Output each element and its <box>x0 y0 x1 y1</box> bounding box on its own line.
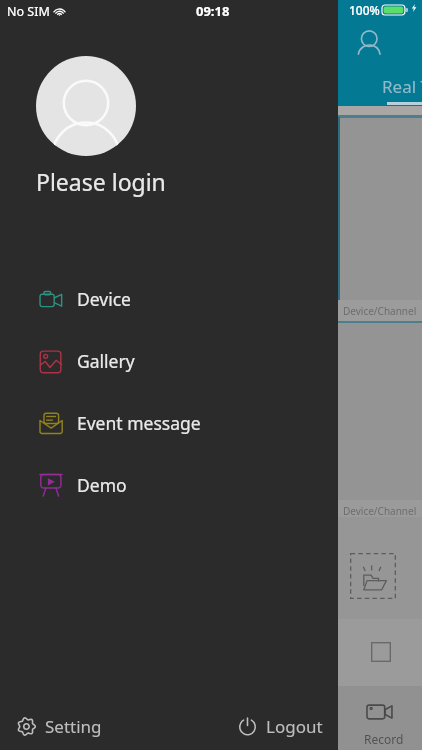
button[interactable]: Logout <box>237 715 323 738</box>
staticText: 100% <box>349 2 380 18</box>
button[interactable]: Demo <box>0 454 338 516</box>
staticText: Gallery <box>77 349 135 373</box>
staticText: Record <box>364 731 404 747</box>
staticText: Device <box>77 287 131 311</box>
staticText: Please login <box>36 166 166 197</box>
button[interactable]: Setting <box>16 715 102 738</box>
staticText: Setting <box>45 715 102 738</box>
button[interactable]: Avatar <box>36 56 136 156</box>
button[interactable]: Event message <box>0 392 338 454</box>
staticText: Logout <box>266 715 323 738</box>
staticText: 09:18 <box>196 2 230 20</box>
button[interactable]: Device <box>0 268 338 330</box>
staticText: Demo <box>77 473 127 497</box>
button[interactable]: Please login <box>36 166 166 197</box>
staticText: No SIM <box>7 3 50 20</box>
staticText: Device/Channel <box>343 504 417 518</box>
button[interactable]: Gallery <box>0 330 338 392</box>
staticText: Event message <box>77 411 201 435</box>
staticText: Real Time <box>382 75 422 98</box>
staticText: Device/Channel <box>343 304 417 318</box>
